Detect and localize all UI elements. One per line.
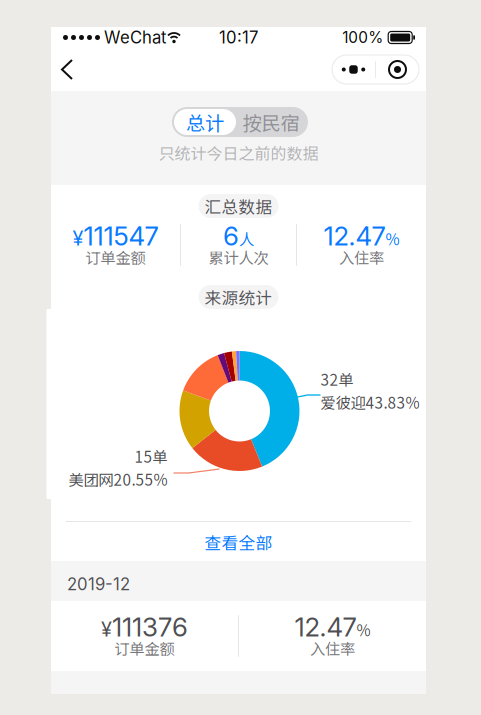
staticText: 美团网20.55%	[68, 468, 167, 490]
staticText: 10:17	[219, 27, 258, 48]
staticText: 来源统计	[204, 285, 272, 309]
staticText: 爱彼迎43.83%	[320, 391, 419, 413]
button[interactable]: 按民宿	[236, 109, 306, 135]
staticText: 15单	[134, 445, 167, 467]
button[interactable]: Back	[51, 49, 88, 90]
staticText: 入住率	[310, 637, 355, 659]
staticText: 人	[239, 227, 254, 250]
staticText: 111547	[83, 220, 158, 252]
staticText: %	[385, 227, 399, 250]
staticText: 2019-12	[67, 574, 130, 594]
button[interactable]: 总计	[174, 109, 236, 135]
staticText: 订单金额	[114, 637, 174, 659]
staticText: ¥	[101, 617, 112, 641]
staticText: 100%	[342, 28, 383, 47]
staticText: 按民宿	[242, 108, 299, 136]
staticText: 12.47	[323, 220, 385, 252]
button[interactable]: Close	[376, 55, 419, 84]
staticText: 总计	[186, 108, 224, 136]
button[interactable]: More	[332, 55, 375, 84]
staticText: 32单	[320, 368, 353, 390]
staticText: 6	[223, 220, 239, 252]
staticText: WeChat	[104, 27, 166, 48]
staticText: 12.47	[294, 611, 356, 643]
staticText: %	[356, 618, 370, 641]
staticText: 订单金额	[85, 246, 145, 268]
staticText: 只统计今日之前的数据	[158, 141, 318, 164]
staticText: 入住率	[339, 246, 384, 268]
staticText: 查看全部	[204, 530, 272, 554]
staticText: 111376	[112, 611, 188, 643]
button[interactable]: 查看全部	[51, 529, 426, 555]
staticText: ¥	[72, 226, 83, 250]
staticText: 累计人次	[208, 246, 268, 268]
staticText: 汇总数据	[204, 194, 272, 218]
